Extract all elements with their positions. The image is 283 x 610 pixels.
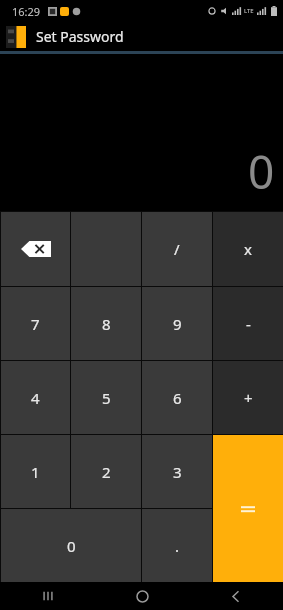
staticText: 2 (102, 462, 111, 482)
button[interactable]: 8 (71, 287, 141, 360)
staticText: + (244, 388, 253, 408)
button[interactable]: . (142, 509, 212, 582)
button[interactable]: Home (95, 582, 189, 610)
staticText: 9 (173, 314, 182, 334)
staticText: 8 (102, 314, 111, 334)
staticText: 6 (173, 388, 182, 408)
button[interactable]: Backspace (1, 212, 70, 286)
button[interactable]: 3 (142, 435, 212, 508)
button[interactable]: 6 (142, 361, 212, 434)
staticText: . (175, 536, 180, 556)
staticText: LTE (244, 7, 254, 15)
staticText: 4 (31, 388, 40, 408)
staticText: 16:29 (12, 4, 41, 19)
button[interactable]: / (142, 212, 212, 286)
staticText: 5 (102, 388, 111, 408)
staticText: x (244, 239, 252, 259)
staticText: - (246, 314, 251, 334)
button[interactable]: 2 (71, 435, 141, 508)
staticText: 7 (31, 314, 40, 334)
button[interactable]: + (213, 361, 283, 434)
button[interactable]: - (213, 287, 283, 360)
button[interactable]: 5 (71, 361, 141, 434)
button[interactable]: x (213, 212, 283, 286)
staticText: 0 (248, 140, 275, 203)
button[interactable]: 1 (1, 435, 70, 508)
button[interactable]: 0 (1, 509, 141, 582)
button[interactable]: 7 (1, 287, 70, 360)
button[interactable]: 4 (1, 361, 70, 434)
staticText: 0 (67, 536, 76, 556)
button[interactable]: Recents (0, 582, 95, 610)
button[interactable]: Back (189, 582, 283, 610)
staticText: Set Password (36, 27, 124, 46)
staticText: 3 (173, 462, 182, 482)
button[interactable]: 9 (142, 287, 212, 360)
staticText: / (174, 239, 180, 259)
staticText: 1 (31, 462, 40, 482)
button[interactable] (213, 435, 283, 582)
